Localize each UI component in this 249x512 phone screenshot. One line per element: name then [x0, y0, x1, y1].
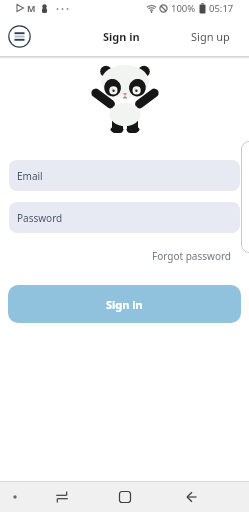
staticText: Password — [17, 211, 63, 225]
button[interactable]: Sign in — [103, 29, 140, 44]
staticText: Email — [17, 169, 43, 183]
button[interactable] — [117, 489, 133, 505]
button[interactable]: Forgot password — [152, 249, 232, 263]
button[interactable]: Sign in — [8, 285, 241, 323]
staticText: 05:17 — [209, 2, 234, 15]
staticText: M — [27, 2, 36, 14]
button[interactable] — [8, 25, 31, 48]
button[interactable] — [183, 489, 199, 505]
staticText: 100% — [171, 2, 196, 15]
button[interactable]: Sign up — [191, 29, 230, 44]
button[interactable] — [54, 489, 70, 505]
button[interactable]: Email — [9, 160, 240, 191]
button[interactable]: Password — [9, 202, 240, 233]
staticText: Sign in — [106, 297, 143, 312]
